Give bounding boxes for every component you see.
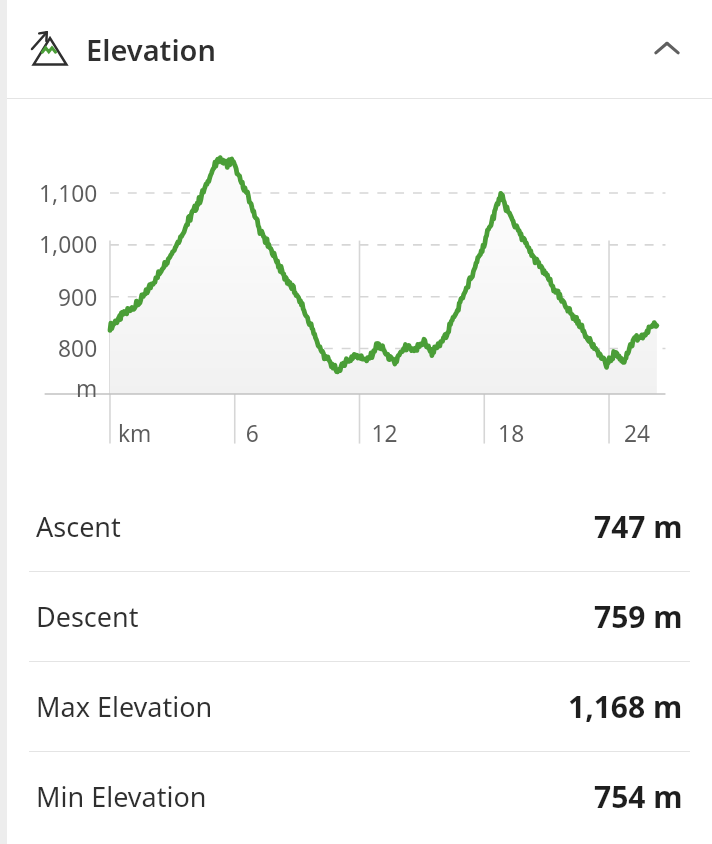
- other: Elevation: [30, 29, 70, 69]
- staticText: 747 m: [594, 506, 683, 547]
- staticText: Ascent: [36, 508, 121, 545]
- staticText: 754 m: [594, 776, 683, 817]
- button[interactable]: Elevation: [7, 0, 712, 98]
- button[interactable]: Max Elevation: [7, 662, 712, 751]
- staticText: 759 m: [594, 596, 683, 637]
- staticText: Elevation: [86, 30, 216, 69]
- button[interactable]: Ascent: [7, 482, 712, 571]
- button[interactable]: Descent: [7, 572, 712, 661]
- button[interactable]: Collapse Elevation: [636, 18, 698, 80]
- staticText: Max Elevation: [36, 688, 213, 725]
- staticText: 1,168 m: [568, 686, 683, 727]
- staticText: Descent: [36, 598, 139, 635]
- button[interactable]: Min Elevation: [7, 752, 712, 841]
- staticText: Min Elevation: [36, 778, 207, 815]
